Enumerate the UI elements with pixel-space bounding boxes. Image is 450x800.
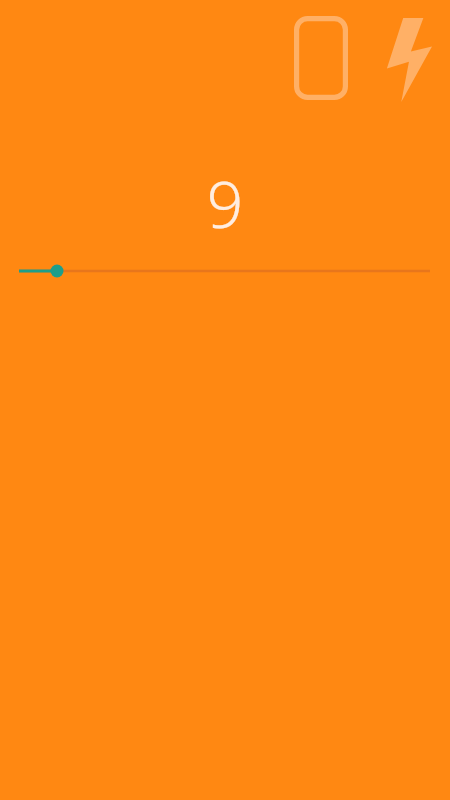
button[interactable]: Charging — [384, 18, 432, 102]
button[interactable] — [0, 251, 450, 291]
button[interactable]: Device — [294, 16, 348, 100]
staticText: 9 — [0, 160, 450, 247]
